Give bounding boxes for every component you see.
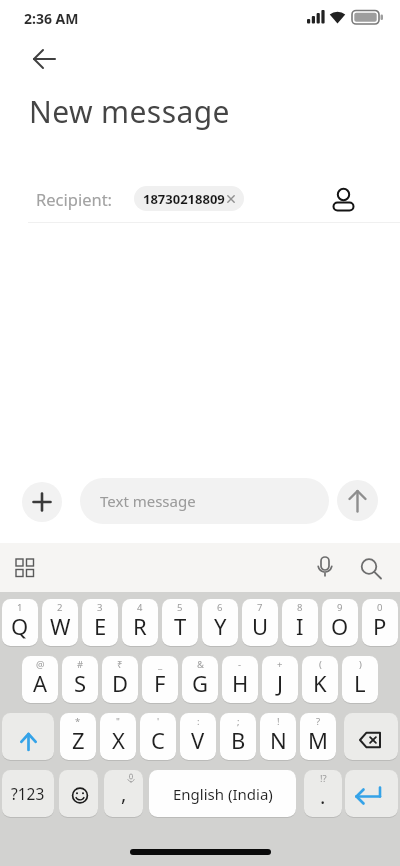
button[interactable]: ; — [220, 713, 256, 760]
staticText: R — [133, 611, 147, 641]
button[interactable]: 1 — [2, 599, 38, 646]
staticText: " — [116, 715, 120, 728]
button[interactable] — [310, 553, 340, 583]
staticText: 6 — [217, 601, 223, 614]
staticText: New message — [29, 91, 230, 132]
staticText: 2:36 AM — [24, 9, 79, 28]
staticText: N — [270, 725, 287, 755]
button[interactable] — [2, 713, 54, 760]
staticText: Text message — [100, 491, 196, 511]
staticText: U — [252, 611, 269, 641]
button[interactable]: Text message — [80, 478, 329, 524]
button[interactable]: 18730218809 — [134, 186, 244, 211]
staticText: + — [277, 658, 283, 671]
staticText: ?123 — [11, 783, 45, 804]
staticText: ( — [319, 658, 322, 671]
staticText: 0 — [377, 601, 383, 614]
staticText: & — [197, 658, 204, 671]
staticText: ! — [277, 715, 280, 728]
button[interactable] — [22, 482, 62, 522]
button[interactable] — [344, 713, 398, 760]
staticText: Recipient: — [36, 188, 113, 210]
button[interactable] — [59, 770, 98, 817]
staticText: K — [313, 668, 327, 698]
button[interactable]: ! — [260, 713, 296, 760]
staticText: ; — [237, 715, 240, 728]
staticText: L — [354, 668, 366, 698]
button[interactable]: ' — [140, 713, 176, 760]
button[interactable]: - — [222, 656, 258, 703]
button[interactable]: + — [262, 656, 298, 703]
button[interactable]: * — [60, 713, 96, 760]
staticText: : — [197, 715, 200, 728]
button[interactable]: ₹ — [102, 656, 138, 703]
staticText: D — [112, 668, 129, 698]
staticText: A — [33, 668, 48, 698]
button[interactable] — [328, 182, 364, 218]
button[interactable]: 7 — [242, 599, 278, 646]
button[interactable] — [355, 553, 387, 585]
staticText: English (India) — [173, 784, 273, 804]
button[interactable] — [345, 770, 398, 817]
button[interactable]: ?123 — [2, 770, 54, 817]
staticText: ₹ — [117, 658, 123, 671]
staticText: _ — [158, 658, 163, 671]
staticText: 18730218809 — [143, 190, 225, 208]
staticText: - — [238, 658, 242, 671]
button[interactable]: " — [100, 713, 136, 760]
staticText: 7 — [257, 601, 263, 614]
button[interactable]: 3 — [82, 599, 118, 646]
button[interactable]: 2 — [42, 599, 78, 646]
button[interactable]: 0 — [362, 599, 398, 646]
staticText: @ — [36, 658, 45, 671]
button[interactable] — [337, 480, 378, 521]
button[interactable]: 8 — [282, 599, 318, 646]
staticText: * — [75, 715, 81, 728]
button[interactable] — [8, 556, 42, 582]
button[interactable]: ( — [302, 656, 338, 703]
staticText: J — [277, 668, 284, 698]
staticText: F — [154, 668, 166, 698]
staticText: 2 — [57, 601, 63, 614]
staticText: # — [77, 658, 84, 671]
staticText: E — [94, 611, 107, 641]
button[interactable]: : — [180, 713, 216, 760]
staticText: Q — [11, 611, 29, 641]
staticText: 1 — [17, 601, 23, 614]
button[interactable]: 9 — [322, 599, 358, 646]
staticText: I — [296, 611, 304, 641]
staticText: 3 — [97, 601, 103, 614]
staticText: 5 — [177, 601, 183, 614]
staticText: Y — [214, 611, 227, 641]
button[interactable]: @ — [22, 656, 58, 703]
button[interactable]: ? — [300, 713, 336, 760]
button[interactable]: , — [104, 770, 143, 817]
button[interactable]: 5 — [162, 599, 198, 646]
staticText: ) — [359, 658, 362, 671]
staticText: ? — [316, 715, 321, 728]
button[interactable]: # — [62, 656, 98, 703]
staticText: , — [121, 780, 127, 807]
staticText: X — [112, 725, 125, 755]
button[interactable]: _ — [142, 656, 178, 703]
button[interactable]: 4 — [122, 599, 158, 646]
button[interactable]: English (India) — [149, 770, 296, 817]
staticText: !? — [320, 772, 327, 785]
button[interactable]: !? — [304, 770, 342, 817]
staticText: . — [320, 783, 326, 810]
staticText: M — [308, 725, 328, 755]
staticText: C — [151, 725, 165, 755]
staticText: 9 — [337, 601, 343, 614]
staticText: ' — [157, 715, 160, 728]
staticText: G — [192, 668, 209, 698]
staticText: O — [331, 611, 349, 641]
button[interactable]: ) — [342, 656, 378, 703]
staticText: T — [174, 611, 187, 641]
staticText: B — [231, 725, 246, 755]
button[interactable] — [24, 45, 64, 75]
button[interactable]: 6 — [202, 599, 238, 646]
staticText: 8 — [297, 601, 303, 614]
button[interactable]: & — [182, 656, 218, 703]
staticText: P — [373, 611, 387, 641]
staticText: H — [232, 668, 249, 698]
